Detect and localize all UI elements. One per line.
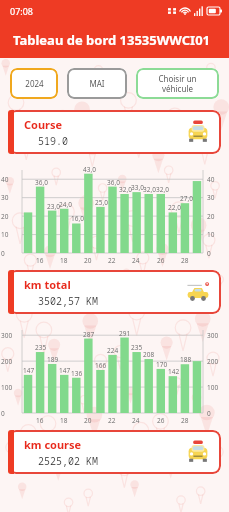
staticText: 28	[181, 256, 189, 265]
staticText: 519.0	[38, 134, 68, 148]
staticText: 0	[1, 409, 5, 418]
staticText: 33,0	[131, 183, 144, 192]
staticText: 20	[1, 212, 9, 221]
staticText: 100	[1, 383, 13, 392]
staticText: 26	[157, 416, 165, 425]
staticText: 147	[59, 366, 71, 375]
staticText: 22,0	[168, 203, 181, 212]
staticText: 300	[1, 331, 13, 340]
staticText: 208	[143, 350, 155, 359]
staticText: 188	[180, 355, 192, 364]
staticText: 28	[181, 416, 189, 425]
staticText: 23,0	[47, 202, 60, 211]
staticText: 24	[132, 256, 140, 265]
staticText: 30	[1, 193, 9, 202]
staticText: 224	[107, 346, 119, 355]
staticText: 142	[168, 367, 180, 376]
staticText: 166	[95, 361, 107, 370]
staticText: 40	[1, 175, 9, 184]
staticText: 291	[119, 329, 131, 338]
button[interactable]	[8, 110, 221, 154]
staticText: 0	[207, 409, 211, 418]
staticText: 40	[207, 175, 215, 184]
staticText: 18	[60, 256, 68, 265]
staticText: 27,0	[180, 194, 193, 203]
staticText: 0	[1, 249, 5, 258]
staticText: 22	[108, 416, 116, 425]
staticText: 300	[207, 331, 219, 340]
staticText: 24,0	[59, 200, 72, 209]
staticText: 20	[84, 256, 92, 265]
staticText: MAI	[89, 78, 105, 89]
button[interactable]: 2024	[10, 68, 58, 99]
staticText: 2024	[25, 78, 44, 89]
staticText: 10	[207, 230, 215, 239]
staticText: km course	[24, 437, 82, 452]
staticText: 32,0	[119, 185, 132, 194]
staticText: 0	[207, 249, 211, 258]
staticText: 16	[36, 416, 44, 425]
staticText: 30	[207, 193, 215, 202]
staticText: 2525,02 KM	[38, 454, 98, 468]
staticText: 24	[132, 416, 140, 425]
staticText: 235	[131, 343, 143, 352]
staticText: km total	[24, 277, 71, 292]
button[interactable]: MAI	[67, 68, 127, 99]
staticText: 10	[1, 230, 9, 239]
staticText: 20	[207, 212, 215, 221]
staticText: 16,0	[71, 214, 84, 223]
staticText: Tableau de bord 13535WWCI01	[13, 31, 211, 49]
staticText: Course	[24, 117, 63, 132]
staticText: 235	[35, 343, 47, 352]
staticText: 32,0	[143, 185, 156, 194]
other: Vehicule	[186, 280, 210, 304]
staticText: 32,0	[156, 185, 169, 194]
staticText: 16	[36, 256, 44, 265]
button[interactable]	[8, 430, 221, 474]
staticText: 189	[47, 355, 59, 364]
staticText: 136	[71, 369, 83, 378]
other: Taxi	[186, 440, 210, 464]
staticText: 200	[1, 357, 13, 366]
staticText: 200	[207, 357, 219, 366]
staticText: 36,0	[107, 178, 120, 187]
staticText: 07:08	[10, 5, 34, 17]
staticText: Choisir un véhicule	[158, 73, 197, 94]
staticText: 170	[156, 360, 168, 369]
staticText: 25,0	[95, 198, 108, 207]
staticText: 18	[60, 416, 68, 425]
staticText: 22	[108, 256, 116, 265]
staticText: 3502,57 KM	[38, 294, 98, 308]
staticText: 43,0	[83, 165, 96, 174]
staticText: 100	[207, 383, 219, 392]
other: Taxi	[186, 120, 210, 144]
button[interactable]	[8, 270, 221, 314]
staticText: 36,0	[35, 178, 48, 187]
staticText: 147	[23, 366, 35, 375]
staticText: 26	[157, 256, 165, 265]
staticText: 20	[84, 416, 92, 425]
button[interactable]: Choisir un véhicule	[136, 68, 219, 99]
staticText: 287	[83, 330, 95, 339]
